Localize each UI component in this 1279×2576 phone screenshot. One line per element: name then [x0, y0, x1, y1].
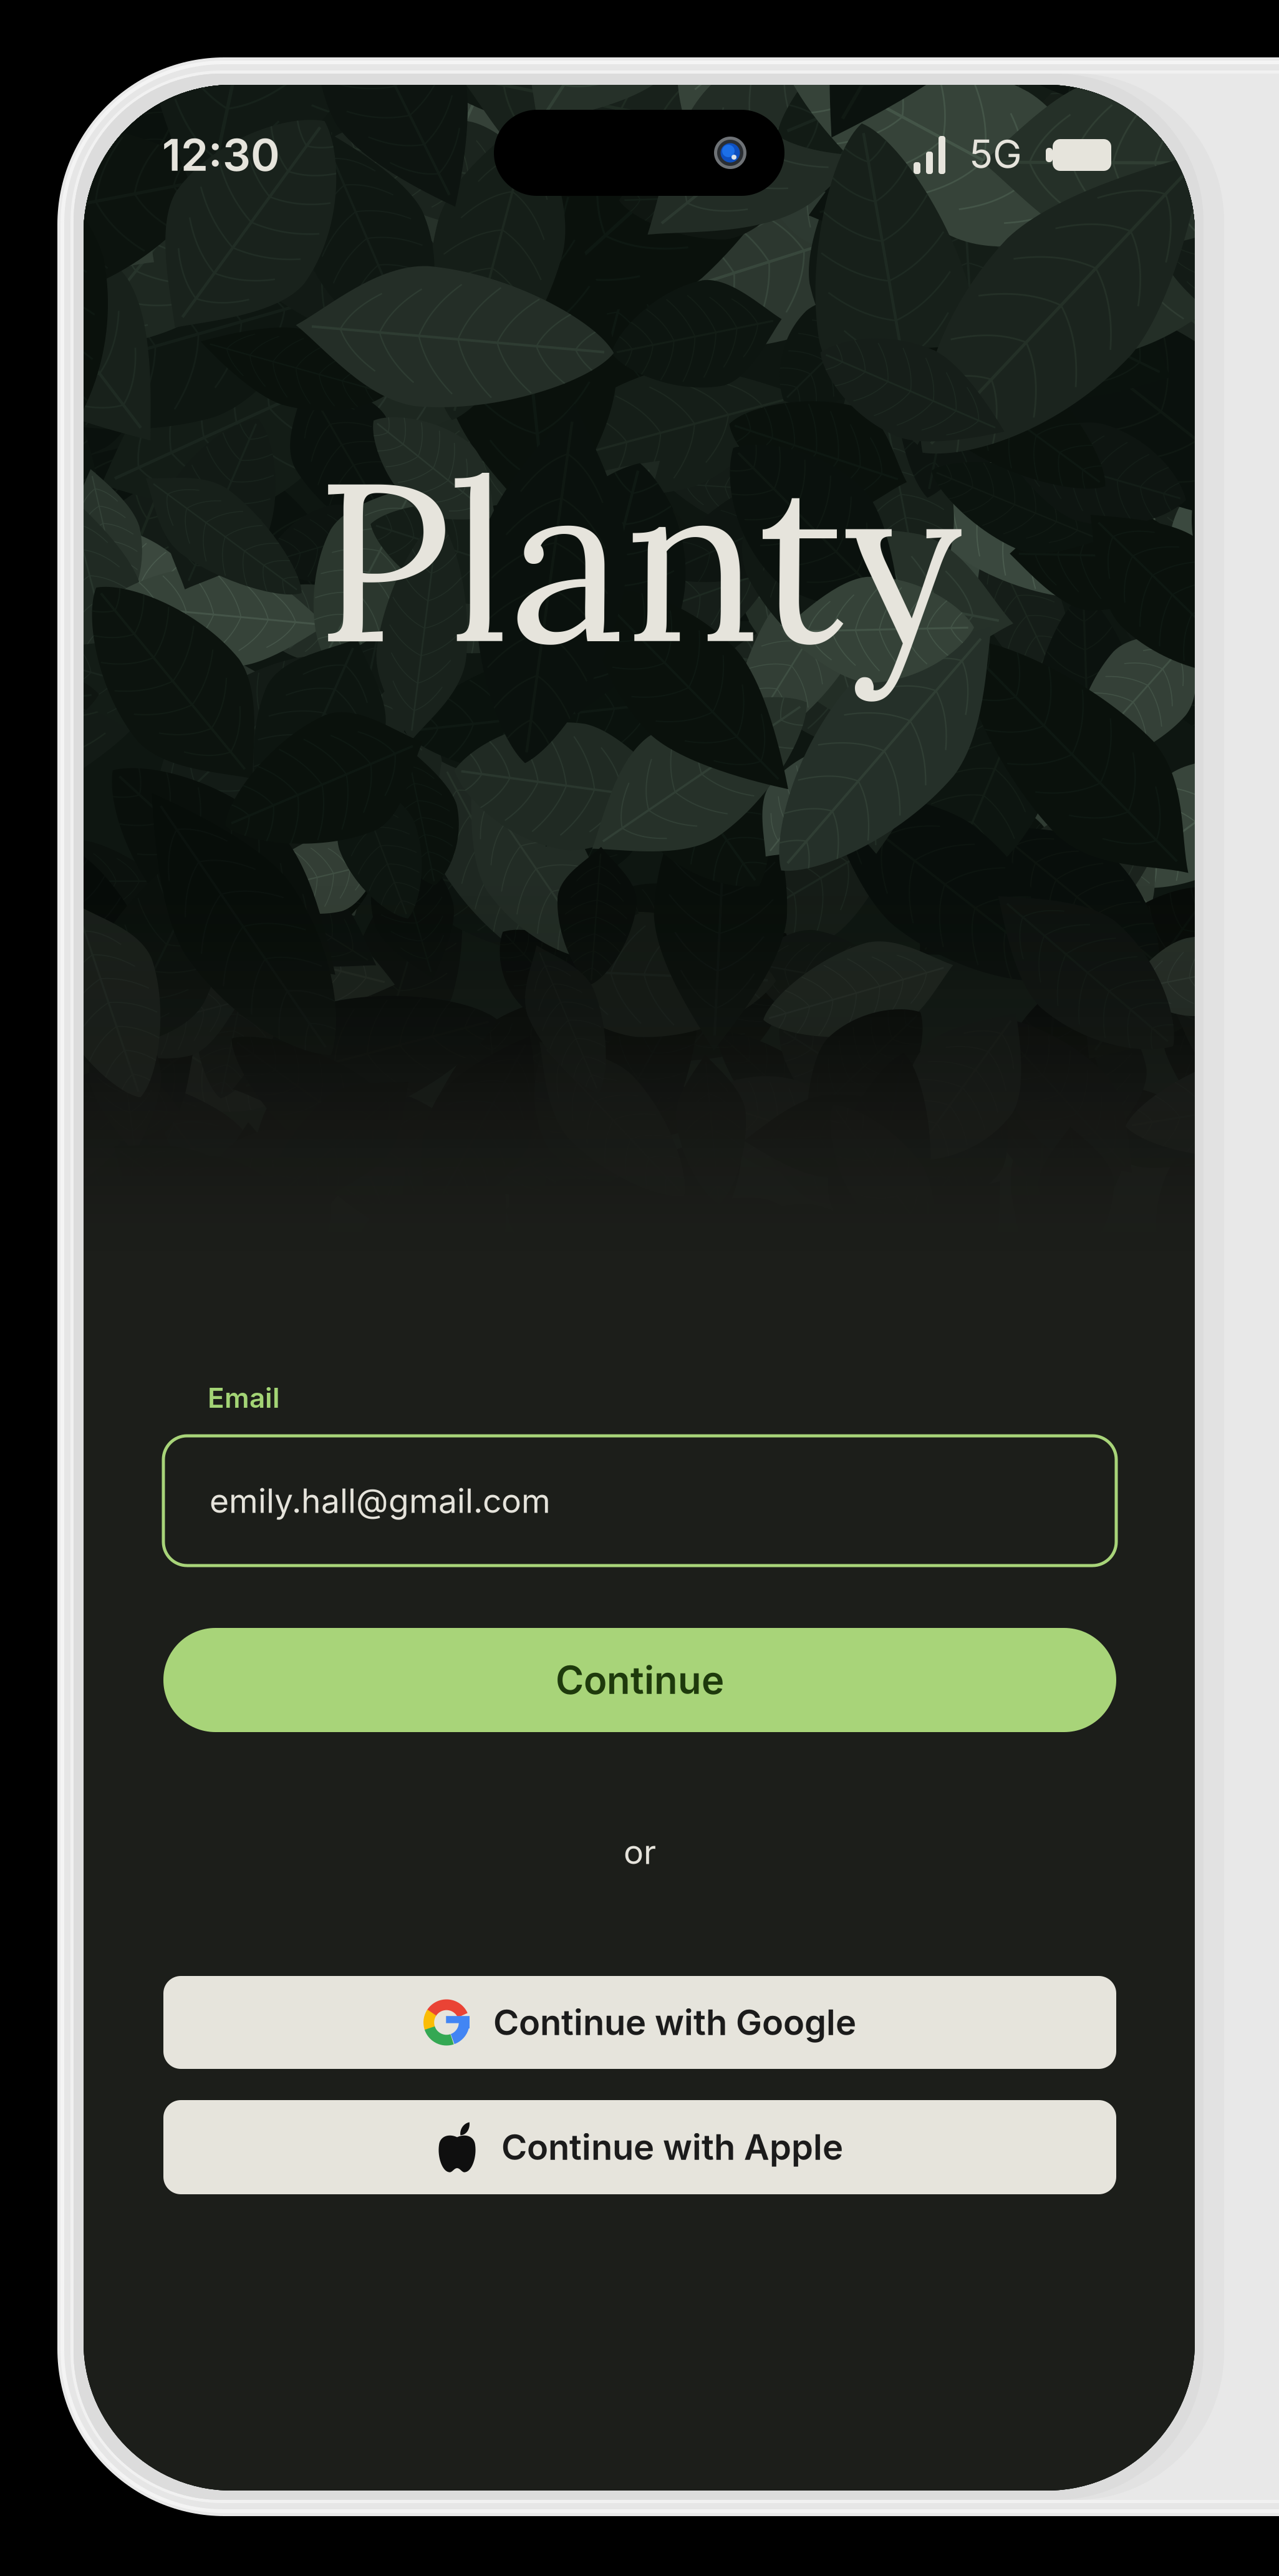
staticText: 5G — [969, 130, 1022, 178]
button[interactable]: emily.hall@gmail.com — [163, 1436, 1116, 1566]
staticText: Planty — [316, 417, 963, 702]
staticText: or — [624, 1832, 656, 1872]
staticText: Continue — [556, 1657, 724, 1703]
button[interactable]: Continue with Apple — [163, 2100, 1116, 2194]
staticText: emily.hall@gmail.com — [210, 1481, 551, 1521]
button[interactable]: Continue with Google — [163, 1976, 1116, 2069]
staticText: Continue with Google — [493, 2001, 856, 2044]
staticText: 12:30 — [162, 128, 280, 181]
staticText: Email — [208, 1381, 280, 1414]
button[interactable]: Continue — [163, 1628, 1116, 1732]
staticText: Continue with Apple — [501, 2126, 843, 2168]
